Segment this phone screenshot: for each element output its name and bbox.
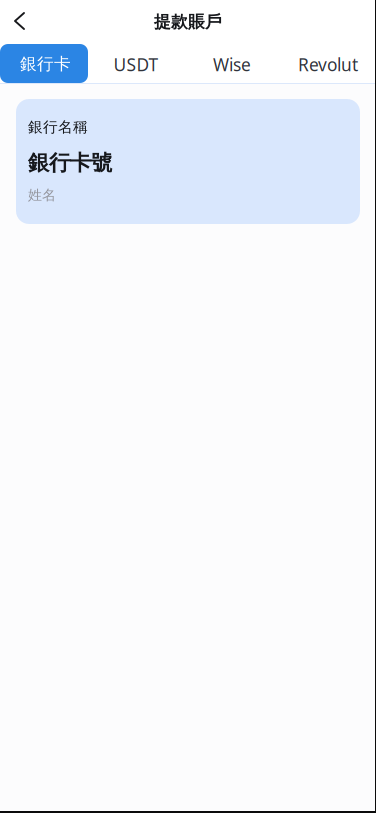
button[interactable]: 銀行卡 <box>0 44 88 83</box>
staticText: 銀行卡 <box>20 53 71 74</box>
staticText: Wise <box>213 53 251 76</box>
staticText: 姓名 <box>28 186 56 204</box>
button[interactable]: Revolut <box>280 44 376 83</box>
button[interactable]: 銀行名稱 <box>16 99 360 224</box>
staticText: 提款賬戶 <box>154 11 222 32</box>
button[interactable]: USDT <box>88 44 184 83</box>
staticText: Revolut <box>298 53 358 76</box>
staticText: 銀行名稱 <box>28 118 88 136</box>
button[interactable]: Back <box>0 1 36 43</box>
button[interactable]: Wise <box>184 44 280 83</box>
staticText: USDT <box>113 53 158 76</box>
staticText: 銀行卡號 <box>28 149 112 176</box>
